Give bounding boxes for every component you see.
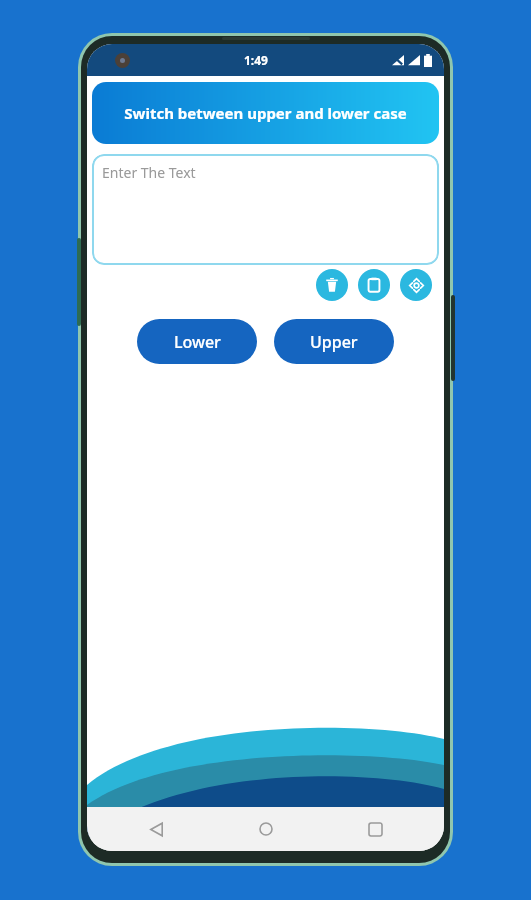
button[interactable]: Switch between upper and lower case bbox=[92, 82, 439, 144]
button[interactable]: Recent apps bbox=[358, 812, 392, 846]
staticText: Switch between upper and lower case bbox=[124, 103, 407, 123]
button[interactable]: Paste bbox=[358, 269, 390, 301]
button[interactable]: Back bbox=[139, 812, 173, 846]
button[interactable]: Share bbox=[400, 269, 432, 301]
button[interactable]: Home bbox=[249, 812, 283, 846]
button[interactable]: Delete bbox=[316, 269, 348, 301]
staticText: Lower bbox=[174, 331, 221, 353]
button[interactable]: Upper bbox=[274, 319, 394, 364]
staticText: 1:49 bbox=[244, 52, 268, 68]
staticText: Upper bbox=[310, 331, 358, 353]
button[interactable]: Lower bbox=[137, 319, 257, 364]
staticText: Enter The Text bbox=[102, 163, 196, 182]
button[interactable]: Enter The Text bbox=[92, 154, 439, 265]
